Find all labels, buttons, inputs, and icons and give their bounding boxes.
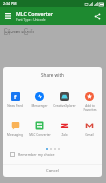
- button[interactable]: Add to Favorites: [77, 92, 102, 113]
- button[interactable]: Gmail: [77, 121, 102, 142]
- staticText: Cancel: [46, 168, 60, 174]
- staticText: CreativeXplorer: [53, 104, 76, 108]
- staticText: News Feed: [7, 104, 23, 108]
- staticText: Messenger: [31, 104, 48, 108]
- staticText: မြန်မာစာ ပြောင်း: [4, 28, 34, 36]
- button[interactable]: Messaging: [3, 121, 27, 142]
- staticText: Share with: [3, 72, 102, 78]
- staticText: Add to Favorites: [83, 104, 97, 112]
- staticText: Messaging: [7, 133, 23, 137]
- staticText: Remember my choice: [18, 152, 55, 157]
- staticText: Font Type : Unicode: [16, 18, 46, 22]
- button[interactable]: Menu: [0, 8, 16, 24]
- staticText: MLC Converter: [16, 10, 53, 17]
- button[interactable]: MLC Converter: [27, 121, 52, 142]
- button[interactable]: CreativeXplorer: [52, 92, 77, 113]
- staticText: Zalo: [61, 133, 68, 137]
- staticText: Gmail: [85, 133, 94, 137]
- button[interactable]: Zalo: [52, 121, 77, 142]
- button[interactable]: f: [3, 92, 27, 113]
- button[interactable]: Remember my choice: [3, 152, 102, 157]
- button[interactable]: Messenger: [27, 92, 52, 113]
- button[interactable]: Cancel: [3, 165, 102, 177]
- staticText: f: [14, 93, 17, 101]
- button[interactable]: Share: [88, 7, 106, 25]
- staticText: MLC Converter: [29, 133, 51, 137]
- staticText: 2:34 PM: [3, 1, 17, 6]
